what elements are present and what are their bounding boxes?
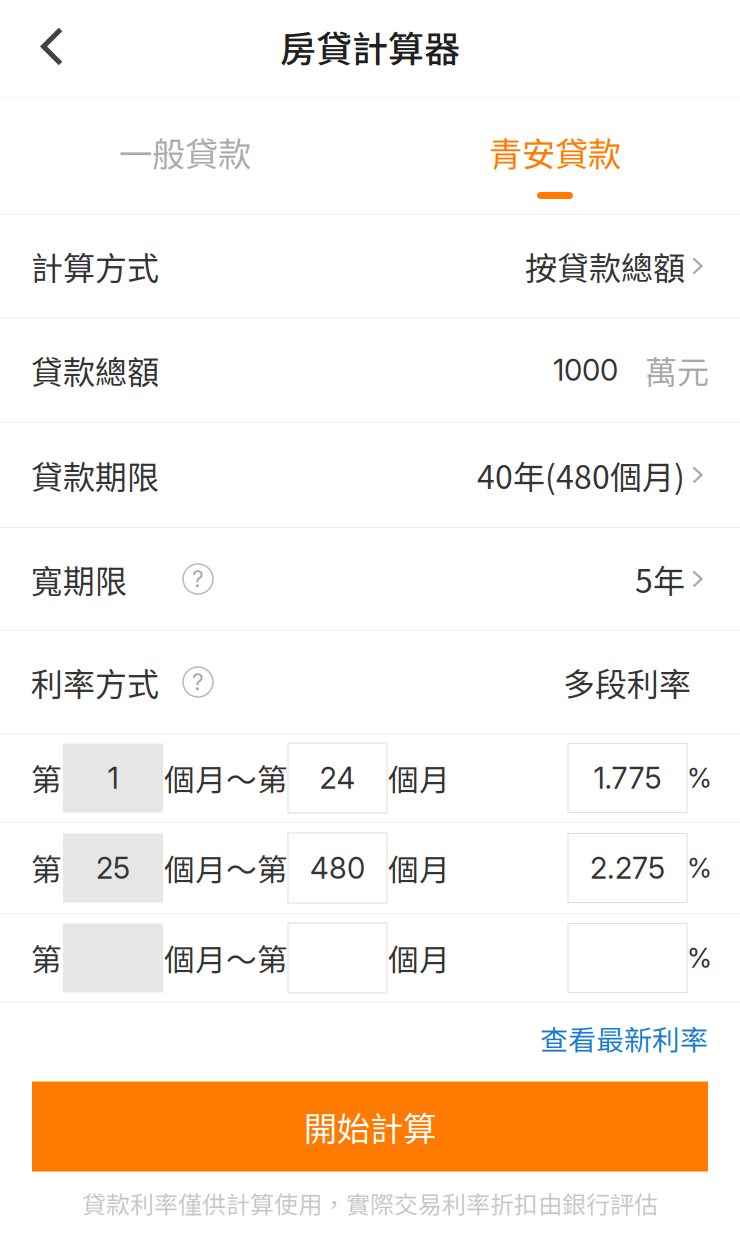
button[interactable]: 查看最新利率 <box>540 1003 740 1081</box>
button[interactable]: Back <box>0 0 93 97</box>
staticText: 利率方式 <box>31 659 159 705</box>
staticText: 個月 <box>388 846 450 890</box>
staticText: 第 <box>31 846 62 890</box>
staticText: 480 <box>310 850 365 886</box>
staticText: 個月 <box>388 936 450 980</box>
staticText: 24 <box>319 760 355 796</box>
button[interactable]: 貸款期限 <box>0 423 740 527</box>
staticText: 1.775 <box>593 760 661 796</box>
staticText: % <box>687 942 712 974</box>
staticText: 個月～第 <box>164 756 288 800</box>
staticText: 個月～第 <box>164 936 288 980</box>
button[interactable]: 寬期限 <box>0 528 740 630</box>
staticText: 房貸計算器 <box>280 20 460 72</box>
staticText: 第 <box>31 756 62 800</box>
staticText: 計算方式 <box>31 243 159 289</box>
staticText: 萬元 <box>645 347 709 393</box>
staticText: 寬期限 <box>31 556 127 602</box>
staticText: 按貸款總額 <box>525 243 685 289</box>
staticText: 多段利率 <box>563 659 691 705</box>
button[interactable]: 一般貸款 <box>0 128 370 176</box>
staticText: 個月 <box>388 756 450 800</box>
staticText: 5年 <box>635 556 685 602</box>
staticText: 開始計算 <box>304 1102 436 1151</box>
button[interactable]: 計算方式 <box>0 215 740 317</box>
staticText: 個月～第 <box>164 846 288 890</box>
staticText: 2.275 <box>590 850 665 886</box>
button[interactable]: 青安貸款 <box>370 128 740 176</box>
button[interactable]: 開始計算 <box>0 1081 740 1171</box>
staticText: 青安貸款 <box>489 128 621 176</box>
staticText: ? <box>192 668 204 696</box>
staticText: % <box>687 852 712 884</box>
staticText: 貸款期限 <box>31 452 159 498</box>
staticText: 一般貸款 <box>119 128 251 176</box>
staticText: 查看最新利率 <box>540 1018 708 1058</box>
staticText: 40年(480個月) <box>477 452 685 498</box>
staticText: 第 <box>31 936 62 980</box>
staticText: ? <box>192 565 204 593</box>
staticText: 1000 <box>553 352 618 388</box>
staticText: 貸款利率僅供計算使用，實際交易利率折扣由銀行評估 <box>82 1185 658 1220</box>
staticText: % <box>687 762 712 794</box>
staticText: 1 <box>107 760 118 796</box>
staticText: 25 <box>96 850 130 886</box>
staticText: 貸款總額 <box>31 347 159 393</box>
